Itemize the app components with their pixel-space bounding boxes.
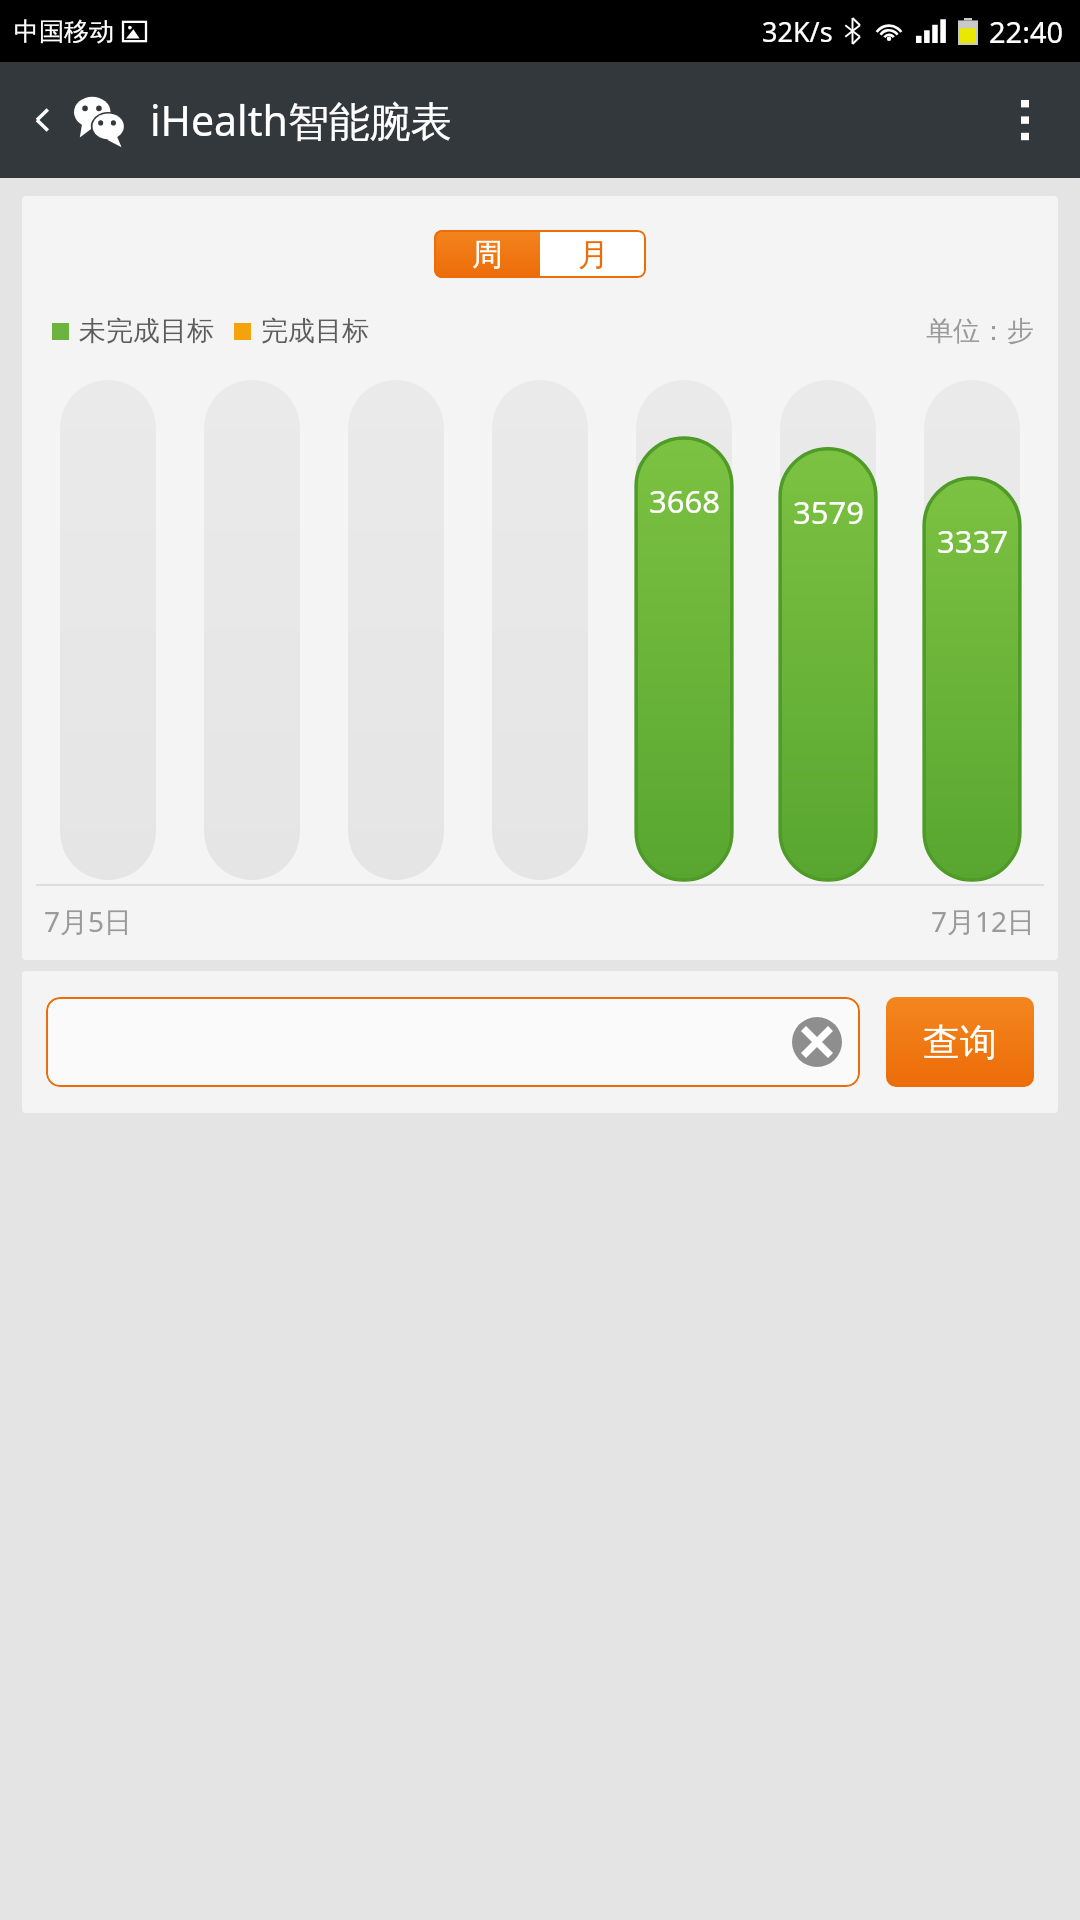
button[interactable]: Clear text (46, 997, 860, 1087)
staticText: 未完成目标 (79, 314, 214, 348)
staticText: iHealth智能腕表 (150, 92, 452, 148)
staticText: 查询 (923, 1019, 997, 1066)
button[interactable]: Back (20, 96, 68, 144)
staticText: 3337 (937, 520, 1008, 562)
staticText: 22:40 (989, 12, 1064, 51)
staticText: 3579 (793, 491, 864, 533)
staticText: 32K/s (762, 13, 833, 50)
staticText: 3668 (649, 480, 720, 522)
staticText: 7月12日 (931, 902, 1036, 940)
staticText: 单位：步 (926, 314, 1034, 348)
button[interactable]: Clear text (792, 1017, 842, 1067)
button[interactable]: 月 (540, 230, 646, 278)
button[interactable]: 周 (434, 230, 540, 278)
button[interactable]: 查询 (886, 997, 1034, 1087)
staticText: 周 (472, 235, 503, 274)
staticText: 7月5日 (44, 902, 133, 940)
staticText: 中国移动 (14, 16, 114, 47)
staticText: 完成目标 (261, 314, 369, 348)
button[interactable]: More options (996, 91, 1054, 149)
staticText: 月 (578, 235, 609, 274)
